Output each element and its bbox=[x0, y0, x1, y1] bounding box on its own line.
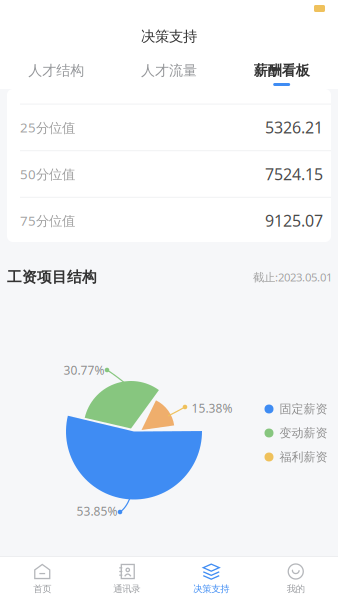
staticText: 我的 bbox=[287, 583, 305, 595]
staticText: 75分位值 bbox=[20, 211, 75, 230]
staticText: 工资项目结构 bbox=[7, 268, 97, 286]
button[interactable]: 首页 bbox=[0, 555, 84, 600]
staticText: 5326.21 bbox=[265, 116, 323, 138]
button[interactable]: 薪酬看板 bbox=[225, 64, 338, 86]
staticText: 7524.15 bbox=[265, 163, 323, 185]
button[interactable]: 我的 bbox=[253, 555, 338, 600]
staticText: 25分位值 bbox=[20, 118, 75, 136]
staticText: 薪酬看板 bbox=[254, 62, 310, 79]
staticText: 通讯录 bbox=[113, 583, 140, 595]
staticText: 15.38% bbox=[191, 400, 232, 416]
button[interactable]: 人才流量 bbox=[113, 64, 225, 86]
staticText: 首页 bbox=[33, 583, 51, 595]
staticText: 变动薪资 bbox=[279, 425, 327, 440]
staticText: 53.85% bbox=[76, 503, 117, 519]
staticText: 30.77% bbox=[63, 362, 104, 378]
staticText: 人才流量 bbox=[141, 62, 197, 79]
staticText: 截止:2023.05.01 bbox=[253, 269, 332, 285]
button[interactable]: 人才结构 bbox=[0, 64, 113, 86]
staticText: 决策支持 bbox=[141, 27, 197, 45]
staticText: 决策支持 bbox=[193, 583, 229, 595]
staticText: 50分位值 bbox=[20, 165, 75, 183]
staticText: 福利薪资 bbox=[279, 449, 327, 464]
button[interactable]: 决策支持 bbox=[169, 555, 253, 600]
staticText: 固定薪资 bbox=[279, 401, 327, 416]
button[interactable]: 通讯录 bbox=[84, 555, 169, 600]
staticText: 9125.07 bbox=[265, 210, 323, 231]
staticText: 人才结构 bbox=[28, 62, 84, 79]
